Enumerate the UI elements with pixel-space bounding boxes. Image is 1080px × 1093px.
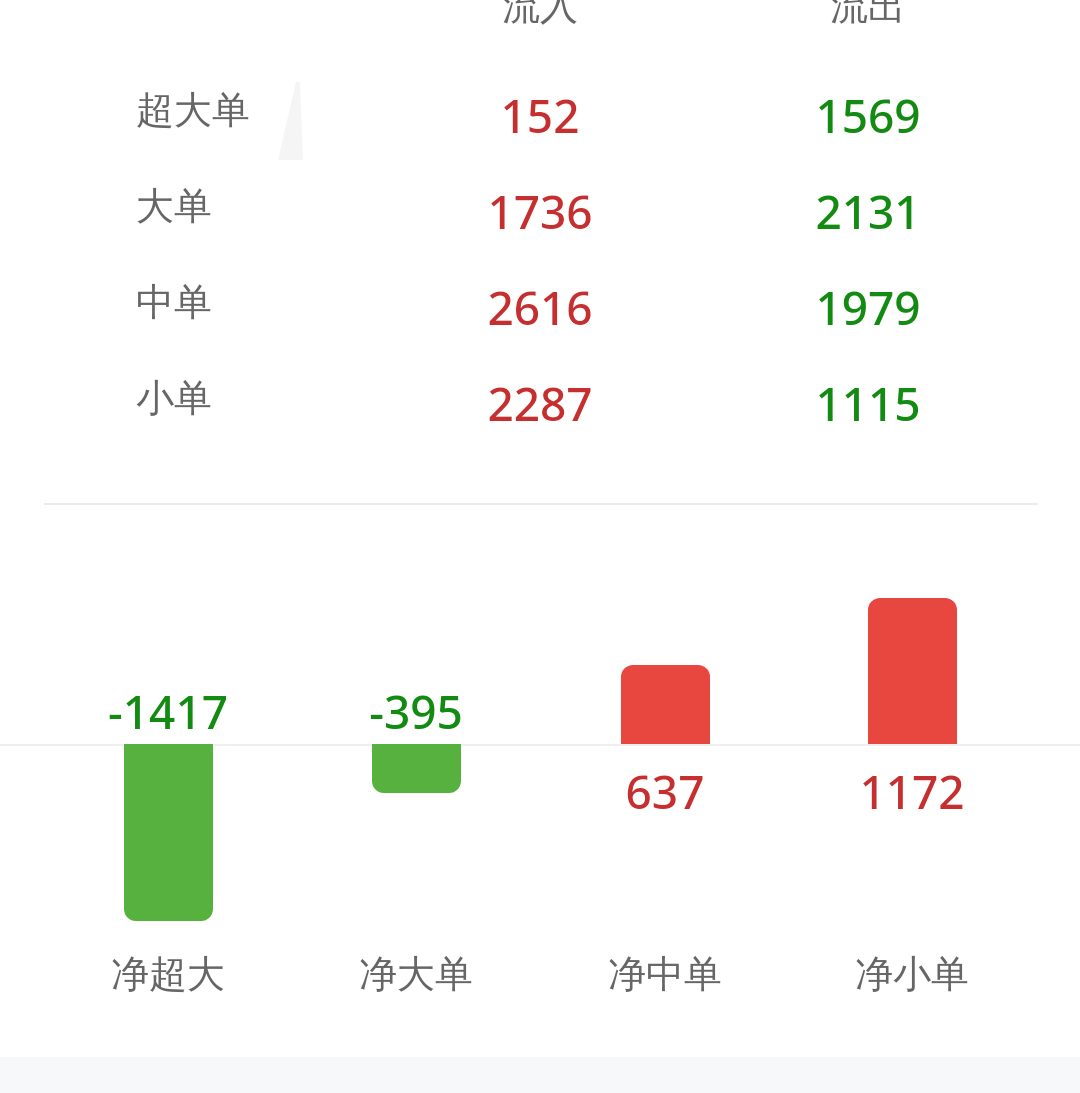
- staticText: 流入: [280, 0, 800, 26]
- staticText: 净大单: [156, 950, 676, 998]
- staticText: -1417: [0, 680, 428, 743]
- staticText: 净小单: [652, 950, 1080, 998]
- staticText: 1979: [608, 276, 1080, 339]
- staticText: 超大单: [136, 86, 250, 134]
- button[interactable]: 超大单: [0, 62, 1080, 158]
- staticText: 净中单: [405, 950, 925, 998]
- staticText: 1569: [608, 84, 1080, 147]
- button[interactable]: 净超大 -1417: [124, 744, 213, 921]
- staticText: 2131: [608, 180, 1080, 243]
- button[interactable]: 净中单 637: [621, 665, 710, 744]
- staticText: 小单: [136, 374, 212, 422]
- staticText: 1115: [608, 372, 1080, 435]
- staticText: 大单: [136, 182, 212, 230]
- button[interactable]: 净大单 -395: [372, 744, 461, 793]
- staticText: 2287: [280, 372, 800, 435]
- staticText: -395: [156, 680, 676, 743]
- staticText: 637: [405, 760, 925, 823]
- staticText: 净超大: [0, 950, 428, 998]
- staticText: 流出: [608, 0, 1080, 26]
- staticText: 152: [280, 84, 800, 147]
- button[interactable]: 小单: [0, 350, 1080, 446]
- button[interactable]: 净小单 1172: [868, 598, 957, 744]
- staticText: 1172: [652, 760, 1080, 823]
- staticText: 2616: [280, 276, 800, 339]
- button[interactable]: 大单: [0, 158, 1080, 254]
- staticText: 1736: [280, 180, 800, 243]
- staticText: 中单: [136, 278, 212, 326]
- button[interactable]: 中单: [0, 254, 1080, 350]
